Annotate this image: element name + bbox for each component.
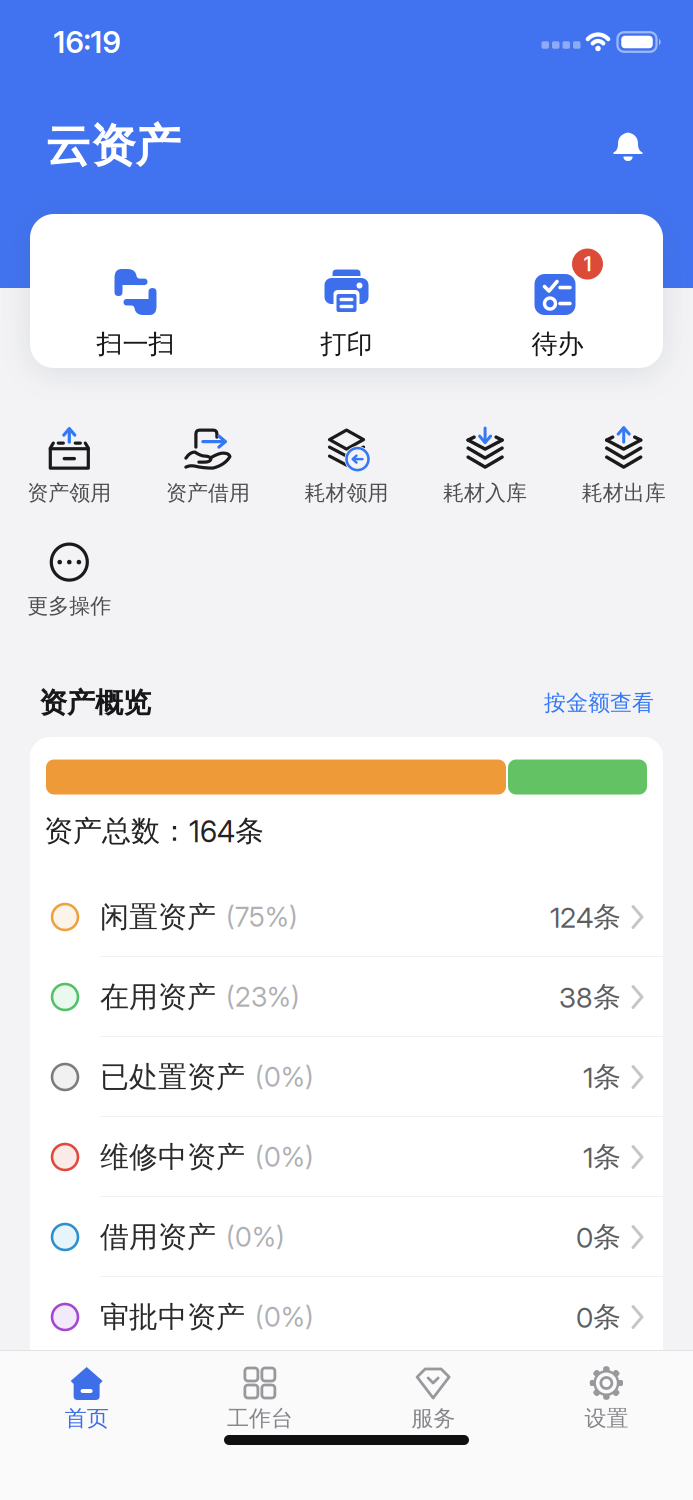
button[interactable]: 设置 xyxy=(520,1365,693,1432)
staticText: 首页 xyxy=(65,1405,109,1432)
staticText: (0%) xyxy=(255,1301,314,1333)
staticText: 云资产 xyxy=(45,118,180,174)
staticText: 资产总数：164条 xyxy=(44,813,264,849)
staticText: 16:19 xyxy=(53,24,120,60)
button[interactable]: 按金额查看 xyxy=(544,689,654,716)
staticText: 1条 xyxy=(583,1060,621,1094)
staticText: 1条 xyxy=(583,1140,621,1174)
staticText: 设置 xyxy=(584,1405,628,1432)
staticText: 124条 xyxy=(550,900,621,934)
staticText: (0%) xyxy=(255,1061,314,1093)
staticText: 0条 xyxy=(576,1220,621,1254)
button[interactable]: 资产借用 xyxy=(139,426,277,506)
staticText: 待办 xyxy=(531,328,583,360)
staticText: 耗材出库 xyxy=(582,480,666,506)
staticText: (0%) xyxy=(226,1221,285,1253)
staticText: 审批中资产 xyxy=(100,1299,245,1335)
staticText: 耗材入库 xyxy=(443,480,527,506)
staticText: 资产借用 xyxy=(166,480,250,506)
button[interactable] xyxy=(611,130,645,162)
staticText: (75%) xyxy=(226,901,298,933)
button[interactable]: 扫一扫 xyxy=(30,268,241,360)
button[interactable]: 耗材领用 xyxy=(277,426,416,506)
staticText: 耗材领用 xyxy=(304,480,388,506)
staticText: 服务 xyxy=(411,1405,455,1432)
staticText: 在用资产 xyxy=(100,979,216,1015)
button[interactable]: 借用资产 xyxy=(30,1197,663,1277)
button[interactable]: 首页 xyxy=(0,1365,173,1432)
staticText: 资产领用 xyxy=(27,480,111,506)
button[interactable]: 审批中资产 xyxy=(30,1277,663,1357)
button[interactable]: 打印 xyxy=(241,268,452,360)
staticText: 按金额查看 xyxy=(544,689,654,716)
staticText: 工作台 xyxy=(227,1405,293,1432)
button[interactable]: 耗材出库 xyxy=(554,426,693,506)
button[interactable]: 耗材入库 xyxy=(416,426,554,506)
button[interactable]: 1 xyxy=(452,268,663,360)
staticText: 38条 xyxy=(559,980,621,1014)
button[interactable]: 在用资产 xyxy=(30,957,663,1037)
staticText: 1 xyxy=(583,252,591,276)
staticText: 已处置资产 xyxy=(100,1059,245,1095)
button[interactable]: 工作台 xyxy=(173,1365,346,1432)
button[interactable]: 更多操作 xyxy=(0,539,139,619)
staticText: 维修中资产 xyxy=(100,1139,245,1175)
staticText: 闲置资产 xyxy=(100,899,216,935)
staticText: 打印 xyxy=(320,328,372,360)
button[interactable]: 服务 xyxy=(346,1365,520,1432)
staticText: 0条 xyxy=(576,1300,621,1334)
staticText: 资产概览 xyxy=(39,686,151,720)
button[interactable]: 已处置资产 xyxy=(30,1037,663,1117)
staticText: 借用资产 xyxy=(100,1219,216,1255)
staticText: (0%) xyxy=(255,1141,314,1173)
staticText: (23%) xyxy=(226,981,300,1013)
staticText: 更多操作 xyxy=(27,593,111,619)
button[interactable]: 维修中资产 xyxy=(30,1117,663,1197)
button[interactable]: 资产领用 xyxy=(0,426,139,506)
button[interactable]: 闲置资产 xyxy=(30,877,663,957)
staticText: 扫一扫 xyxy=(96,328,174,360)
